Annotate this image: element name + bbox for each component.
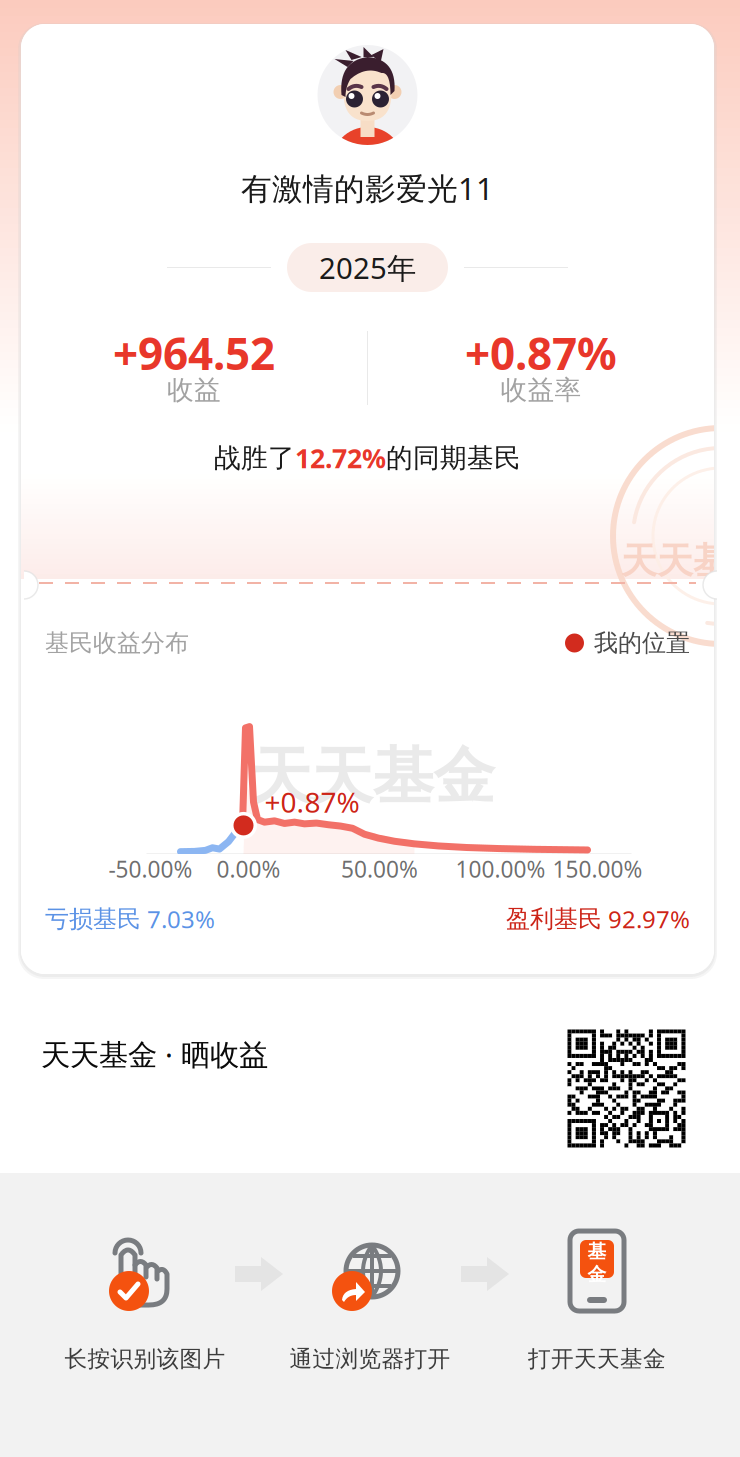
staticText: 7.03% — [141, 903, 215, 935]
staticText: 亏损基民 — [45, 904, 141, 934]
button[interactable]: 天天基金 · 晒收益 — [41, 1037, 268, 1071]
staticText: 通过浏览器打开 — [289, 1345, 450, 1373]
staticText: 100.00% — [455, 854, 545, 884]
staticText: 天天基金 — [250, 739, 494, 814]
staticText: 的同期基民 — [386, 442, 521, 474]
staticText: 0.00% — [216, 854, 280, 884]
staticText: +964.52 — [113, 324, 275, 382]
staticText: 有激情的影爱光11 — [241, 168, 494, 208]
staticText: 12.72% — [295, 440, 386, 476]
staticText: 天天基金 — [621, 539, 740, 583]
staticText: -50.00% — [108, 854, 192, 884]
staticText: 天天基金 · 晒收益 — [41, 1034, 268, 1073]
staticText: 基金 — [587, 1240, 606, 1286]
staticText: 150.00% — [552, 854, 642, 884]
staticText: 长按识别该图片 — [64, 1345, 225, 1373]
staticText: 92.97% — [602, 903, 690, 935]
staticText: 收益 — [167, 374, 221, 406]
staticText: 我的位置 — [594, 628, 690, 658]
staticText: 盈利基民 — [506, 904, 602, 934]
staticText: +0.87% — [465, 324, 617, 382]
staticText: +0.87% — [264, 783, 359, 821]
staticText: 50.00% — [341, 854, 418, 884]
staticText: 基民收益分布 — [45, 628, 189, 658]
staticText: 2025年 — [319, 248, 416, 287]
staticText: 打开天天基金 — [528, 1345, 666, 1373]
staticText: 战胜了 — [214, 442, 295, 474]
staticText: 收益率 — [500, 374, 581, 406]
